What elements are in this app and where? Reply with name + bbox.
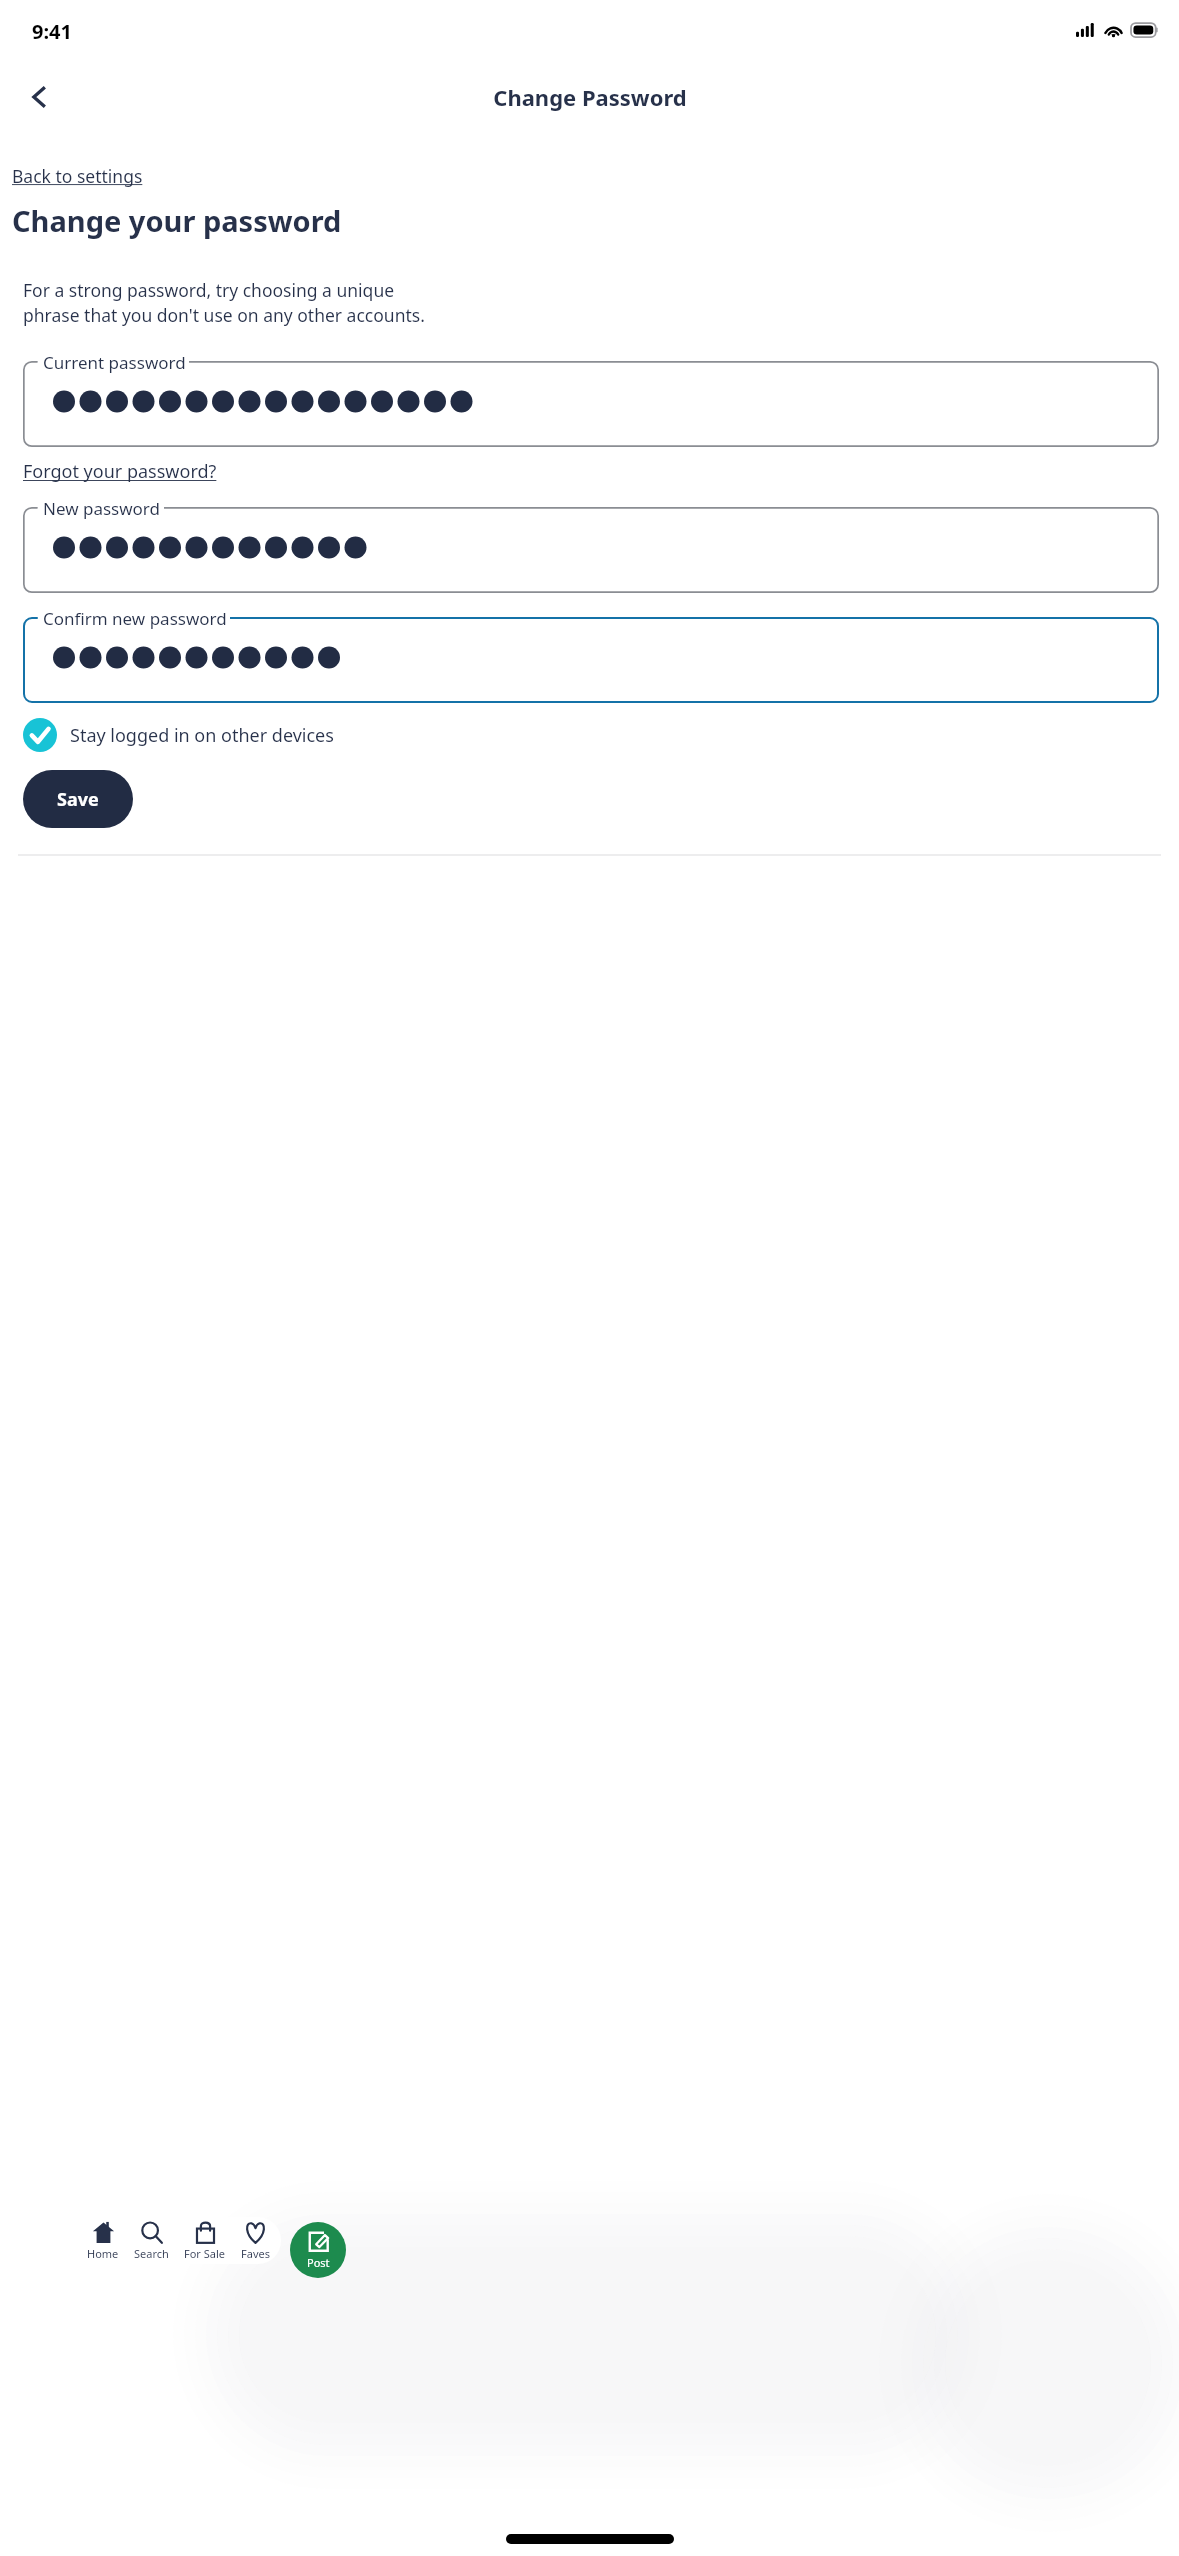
staticText: Confirm new password xyxy=(43,607,227,630)
staticText: Search xyxy=(134,2246,169,2261)
button[interactable]: Forgot your password? xyxy=(23,459,217,484)
button[interactable]: For Sale xyxy=(180,2219,230,2263)
staticText: Faves xyxy=(241,2246,270,2261)
staticText: 9:41 xyxy=(32,18,72,45)
button[interactable]: Save xyxy=(23,770,133,828)
button[interactable]: Faves xyxy=(237,2219,274,2263)
button[interactable]: Post xyxy=(290,2222,346,2278)
staticText: Home xyxy=(87,2246,119,2261)
button[interactable]: Search xyxy=(130,2219,173,2263)
staticText: New password xyxy=(43,497,161,520)
staticText: For Sale xyxy=(184,2246,226,2261)
staticText: Stay logged in on other devices xyxy=(70,723,334,748)
button[interactable]: Back to settings xyxy=(12,162,143,190)
staticText: Back to settings xyxy=(12,164,143,188)
staticText: For a strong password, try choosing a un… xyxy=(23,278,425,327)
button[interactable]: New password xyxy=(23,497,1159,593)
staticText: Change Password xyxy=(493,82,687,112)
staticText: Save xyxy=(57,787,99,812)
button[interactable]: Confirm new password xyxy=(23,607,1159,703)
button[interactable]: Home xyxy=(83,2219,123,2263)
staticText: Forgot your password? xyxy=(23,459,217,484)
button[interactable]: Back xyxy=(14,71,66,123)
staticText: Post xyxy=(307,2255,330,2270)
button[interactable]: Stay logged in on other devices xyxy=(23,718,334,752)
button[interactable]: Current password xyxy=(23,351,1159,447)
staticText: Change your password xyxy=(12,201,342,240)
staticText: Current password xyxy=(43,351,186,374)
